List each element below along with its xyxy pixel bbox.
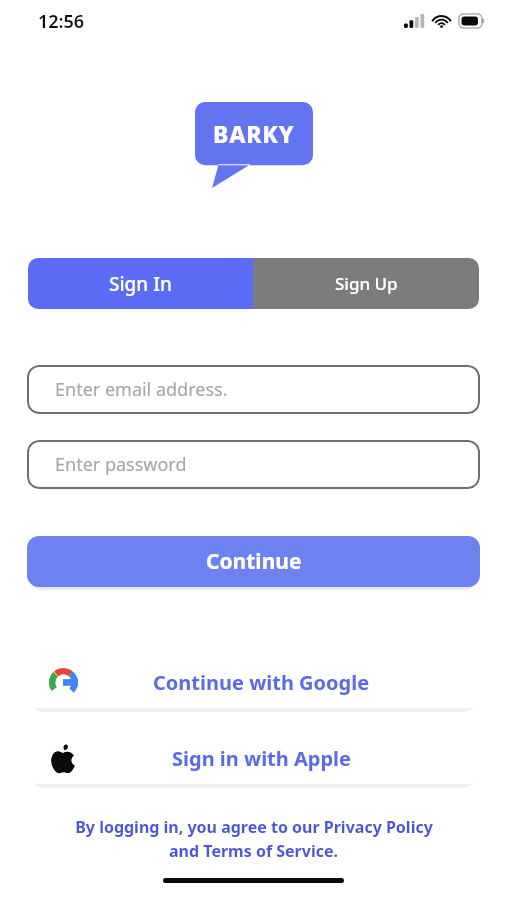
button[interactable]: Continue with Google: [27, 657, 480, 708]
staticText: Enter password: [55, 452, 187, 477]
button[interactable]: By logging in, you agree to our Privacy …: [36, 816, 471, 862]
staticText: Continue: [206, 547, 302, 576]
button[interactable]: Enter email address.: [27, 365, 480, 414]
staticText: By logging in, you agree to our Privacy …: [75, 816, 433, 838]
button[interactable]: Enter password: [27, 440, 480, 489]
staticText: Continue with Google: [153, 669, 370, 696]
button[interactable]: Continue: [27, 536, 480, 587]
staticText: Sign In: [109, 271, 172, 297]
staticText: Sign in with Apple: [172, 745, 352, 772]
staticText: BARKY: [213, 118, 295, 149]
staticText: 12:56: [38, 9, 85, 34]
button[interactable]: Sign Up: [253, 258, 479, 309]
staticText: Enter email address.: [55, 377, 228, 402]
button[interactable]: Sign in with Apple: [27, 733, 480, 784]
other: Home indicator: [163, 878, 344, 883]
staticText: Sign Up: [335, 272, 398, 295]
button[interactable]: Sign In: [28, 258, 253, 309]
staticText: and Terms of Service.: [169, 840, 338, 862]
